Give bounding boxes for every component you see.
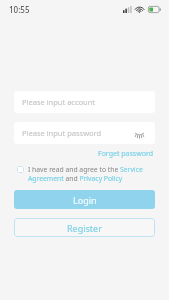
button[interactable]: Show password — [131, 125, 147, 141]
button[interactable]: I have read and agree to the Service Agr… — [28, 165, 155, 183]
button[interactable]: Register — [14, 218, 155, 237]
button[interactable]: Forget password — [97, 148, 155, 160]
button[interactable]: Please input password — [14, 122, 155, 144]
staticText: 10:55 — [9, 4, 30, 15]
staticText: Please input password — [22, 128, 102, 138]
button[interactable]: Agree to terms — [17, 166, 24, 173]
staticText: I have read and agree to the Service Agr… — [28, 165, 155, 183]
button[interactable]: Please input account — [14, 91, 155, 113]
staticText: Register — [67, 222, 102, 234]
staticText: Login — [73, 194, 97, 206]
staticText: Please input account — [22, 97, 96, 107]
staticText: Forget password — [98, 149, 154, 159]
button[interactable]: Login — [14, 190, 155, 209]
